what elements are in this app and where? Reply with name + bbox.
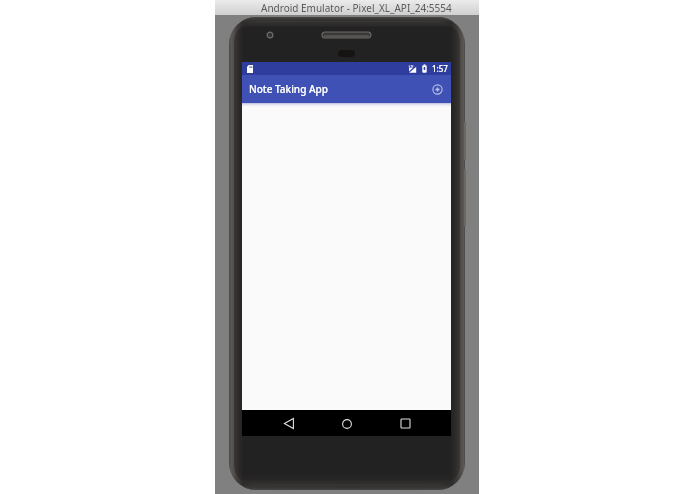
staticText: 1:57 xyxy=(432,63,448,74)
button[interactable]: Home xyxy=(318,411,376,436)
button[interactable]: Add note xyxy=(428,80,446,98)
staticText: Note Taking App xyxy=(249,82,328,96)
staticText: Android Emulator - Pixel_XL_API_24:5554 xyxy=(261,1,452,15)
button[interactable]: Back xyxy=(260,411,318,436)
button[interactable]: Recents xyxy=(376,411,434,436)
